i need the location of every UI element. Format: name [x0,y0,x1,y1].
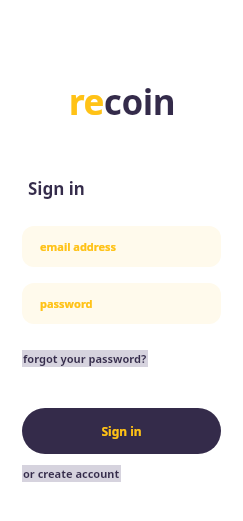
staticText: recoin [69,78,175,126]
staticText: or create account [23,466,120,481]
staticText: Sign in [101,423,142,439]
button[interactable]: or create account [22,465,121,482]
staticText: password [40,296,93,311]
staticText: Sign in [28,177,85,200]
button[interactable]: Sign in [22,408,221,454]
staticText: forgot your password? [23,351,147,366]
staticText: email address [40,239,117,254]
button[interactable]: password [22,283,221,324]
button[interactable]: forgot your password? [22,350,148,367]
button[interactable]: email address [22,226,221,267]
